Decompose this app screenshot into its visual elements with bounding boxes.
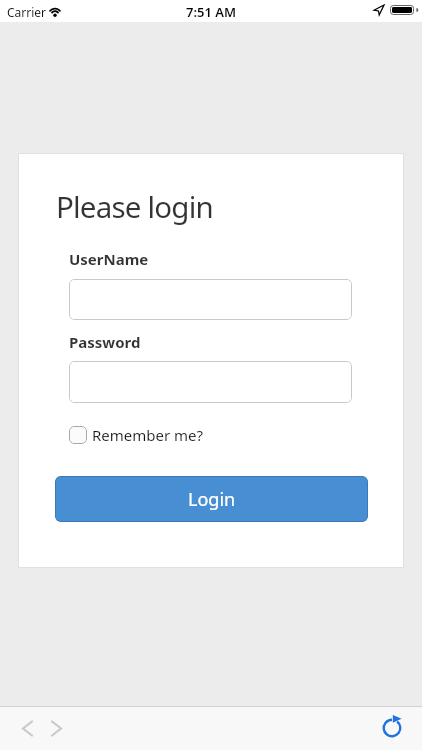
button[interactable] xyxy=(69,361,352,403)
staticText: 7:51 AM xyxy=(186,3,237,21)
staticText: Remember me? xyxy=(92,425,204,445)
staticText: Password xyxy=(69,332,141,352)
button[interactable] xyxy=(44,719,70,739)
staticText: Login xyxy=(188,487,236,512)
button[interactable]: Login xyxy=(55,476,368,522)
staticText: UserName xyxy=(69,249,149,269)
staticText: Carrier xyxy=(7,4,47,20)
button[interactable] xyxy=(378,714,406,740)
staticText: Please login xyxy=(56,186,213,226)
button[interactable] xyxy=(69,279,352,320)
button[interactable]: Remember me? xyxy=(69,425,204,445)
button[interactable] xyxy=(14,719,40,739)
